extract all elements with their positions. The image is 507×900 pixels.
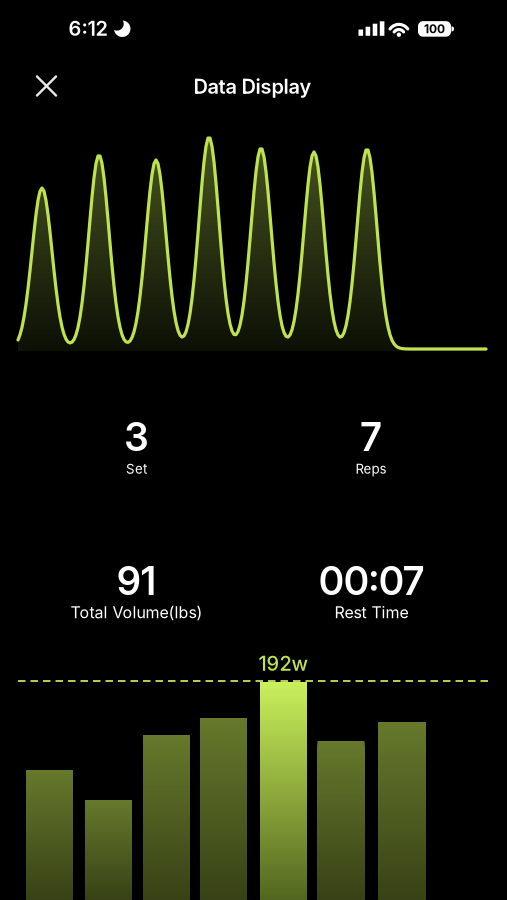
staticText: 100: [424, 22, 445, 36]
staticText: Data Display: [193, 75, 311, 98]
staticText: 192w: [258, 652, 308, 675]
staticText: Set: [126, 461, 147, 477]
staticText: 91: [117, 558, 156, 604]
staticText: 3: [124, 414, 148, 460]
staticText: Total Volume(lbs): [70, 603, 202, 622]
button[interactable]: Close: [24, 64, 68, 108]
staticText: 00:07: [319, 558, 424, 604]
staticText: 6:12: [68, 17, 107, 40]
staticText: Reps: [355, 461, 386, 477]
staticText: Rest Time: [334, 603, 408, 622]
staticText: 7: [360, 414, 381, 460]
